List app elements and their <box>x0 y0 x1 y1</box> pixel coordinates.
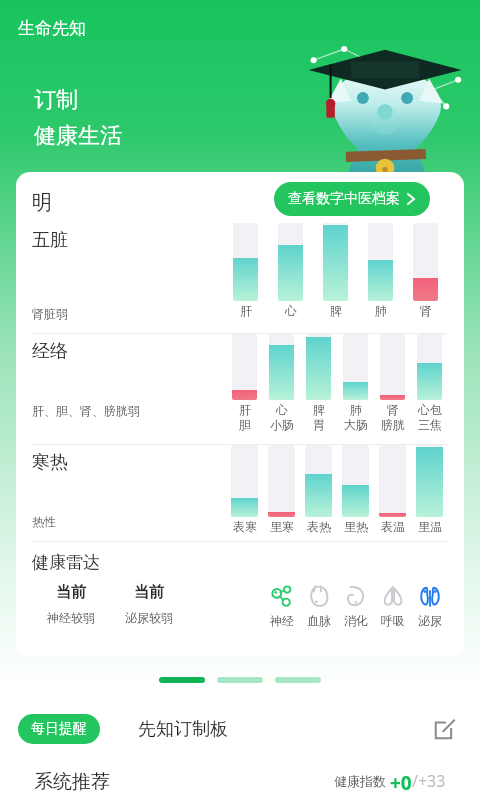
staticText: 健康雷达 <box>32 552 100 573</box>
button[interactable]: 系统推荐 <box>18 762 462 800</box>
staticText: 里温 <box>418 519 442 534</box>
staticText: 脾 <box>330 303 342 318</box>
staticText: 每日提醒 <box>31 720 87 738</box>
staticText: 系统推荐 <box>34 770 110 792</box>
button[interactable]: 呼吸 <box>374 583 411 628</box>
button[interactable]: 编辑 <box>428 712 462 746</box>
staticText: 胃 <box>313 417 325 432</box>
staticText: +0 <box>390 770 412 792</box>
button[interactable]: 血脉 <box>300 583 337 628</box>
staticText: 里寒 <box>270 519 294 534</box>
staticText: 心包 <box>418 402 442 417</box>
button[interactable]: 消化 <box>337 583 374 628</box>
staticText: 里热 <box>344 519 368 534</box>
staticText: 肝 <box>239 402 251 417</box>
staticText: 肺 <box>375 303 387 318</box>
staticText: 消化 <box>344 613 368 628</box>
staticText: 表热 <box>307 519 331 534</box>
staticText: 肝 <box>240 303 252 318</box>
staticText: 肾 <box>387 402 399 417</box>
staticText: 查看数字中医档案 <box>288 190 400 208</box>
staticText: 当前 <box>134 583 164 602</box>
staticText: 表温 <box>381 519 405 534</box>
staticText: 膀胱 <box>381 417 405 432</box>
staticText: 五脏 <box>32 229 68 252</box>
staticText: 肺 <box>350 402 362 417</box>
button[interactable]: 查看数字中医档案 <box>274 182 430 216</box>
staticText: 肾脏弱 <box>32 306 68 321</box>
button[interactable]: 泌尿 <box>411 583 448 628</box>
staticText: 胆 <box>239 417 251 432</box>
staticText: 血脉 <box>307 613 331 628</box>
staticText: 泌尿较弱 <box>125 610 173 625</box>
staticText: 肾 <box>420 303 432 318</box>
staticText: 大肠 <box>344 417 368 432</box>
staticText: 先知订制板 <box>138 718 228 741</box>
staticText: 表寒 <box>233 519 257 534</box>
staticText: 健康生活 <box>34 122 122 150</box>
staticText: 明 <box>32 190 52 215</box>
staticText: 心 <box>276 402 288 417</box>
button[interactable]: 神经 <box>263 583 300 628</box>
staticText: 三焦 <box>418 417 442 432</box>
staticText: 小肠 <box>270 417 294 432</box>
staticText: 热性 <box>32 514 56 529</box>
staticText: 脾 <box>313 402 325 417</box>
staticText: 呼吸 <box>381 613 405 628</box>
staticText: 肝、胆、肾、膀胱弱 <box>32 403 140 418</box>
staticText: 当前 <box>56 583 86 602</box>
staticText: 心 <box>285 303 297 318</box>
button[interactable]: 每日提醒 <box>18 714 100 744</box>
staticText: 寒热 <box>32 451 68 474</box>
staticText: 泌尿 <box>418 613 442 628</box>
staticText: 经络 <box>32 340 68 363</box>
staticText: 生命先知 <box>18 18 86 39</box>
staticText: /+33 <box>412 770 446 792</box>
staticText: 订制 <box>34 86 78 114</box>
staticText: 健康指数 <box>334 772 390 790</box>
staticText: 神经较弱 <box>47 610 95 625</box>
staticText: 神经 <box>270 613 294 628</box>
